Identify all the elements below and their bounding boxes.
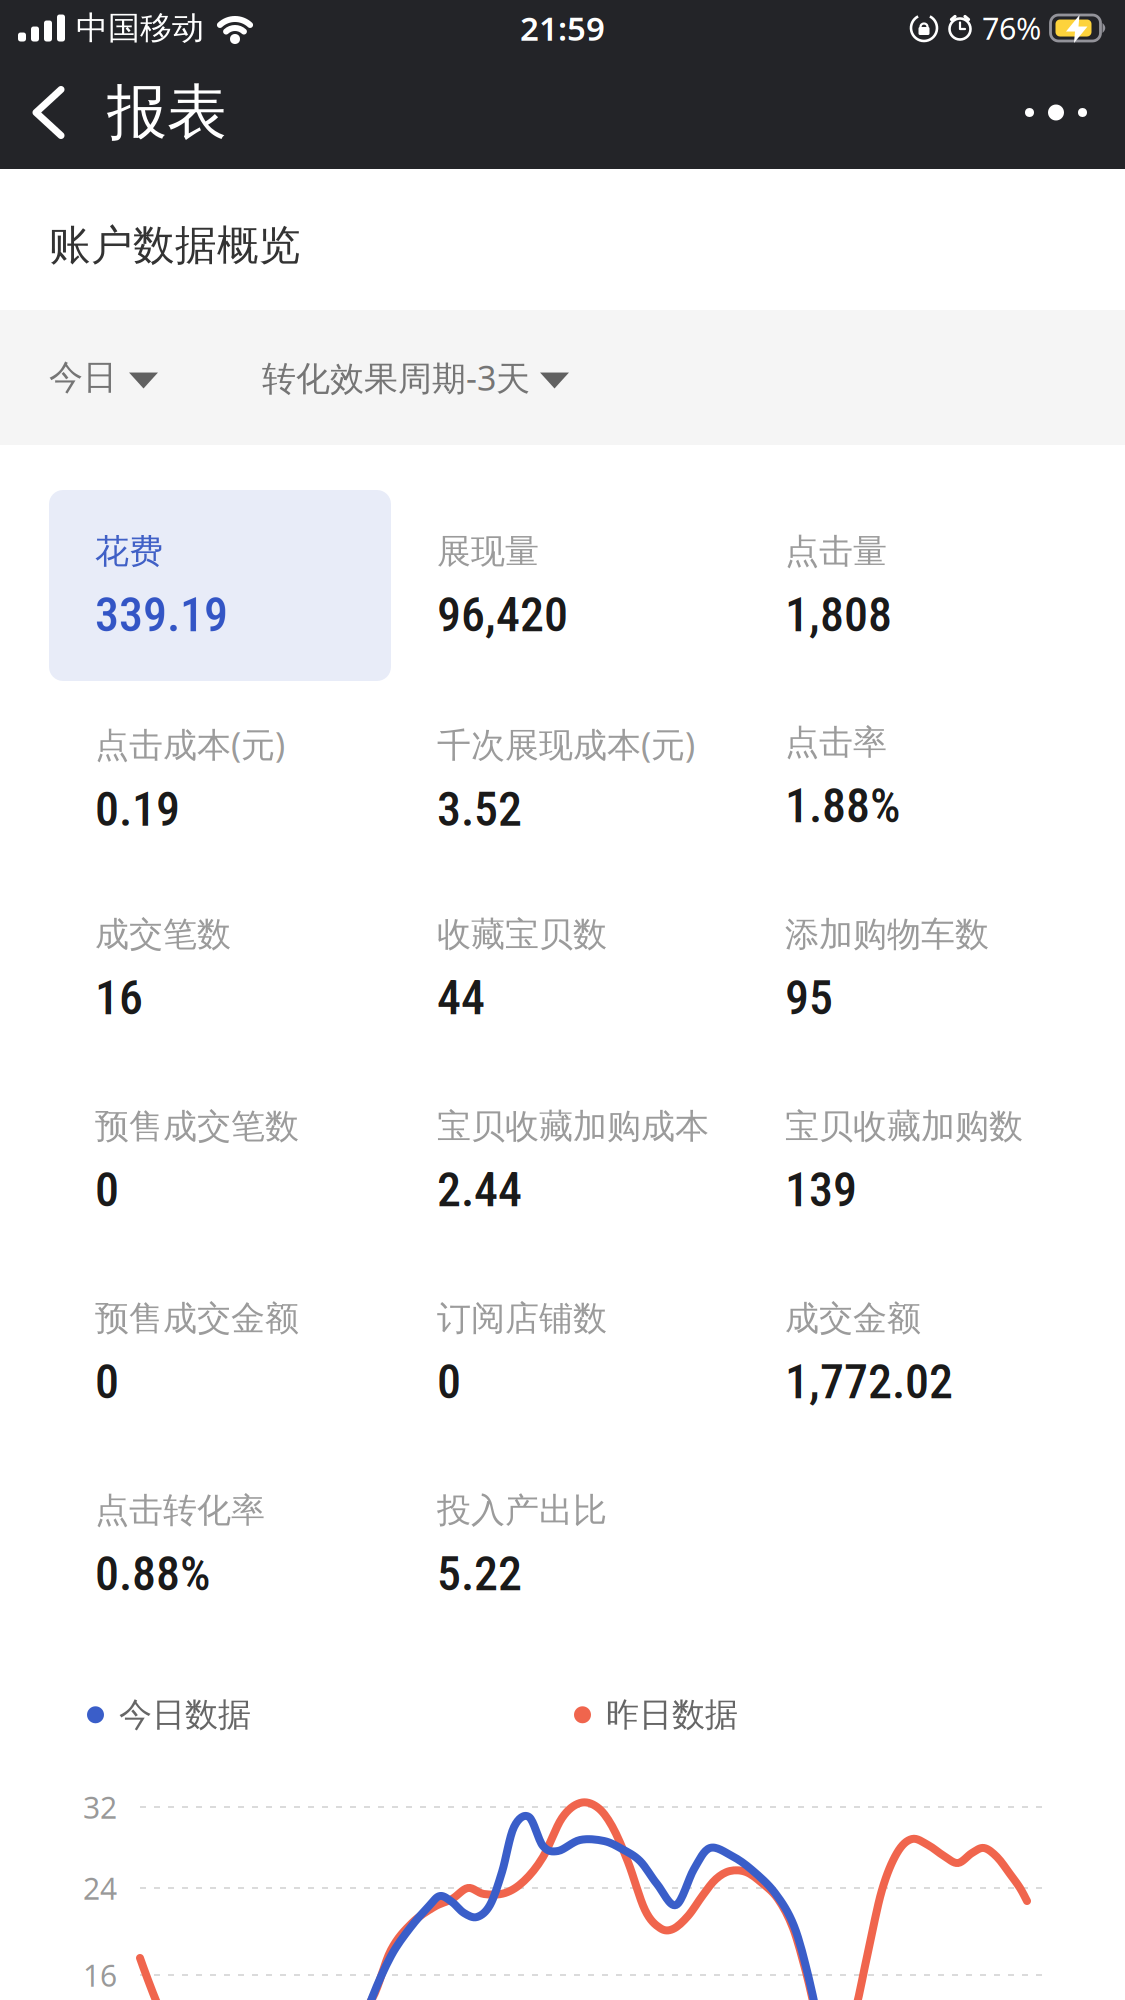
staticText: 339.19 (95, 587, 228, 643)
button[interactable]: 转化效果周期-3天 (262, 354, 569, 401)
button[interactable]: 成交笔数 (49, 873, 391, 1065)
staticText: 报表 (107, 75, 227, 150)
button[interactable]: 点击转化率 (49, 1449, 391, 1641)
button[interactable]: 今日数据 (87, 1694, 251, 1736)
button[interactable]: 点击率 (739, 681, 1087, 873)
staticText: 宝贝收藏加购数 (785, 1105, 1023, 1148)
staticText: 点击成本(元) (95, 721, 285, 767)
button[interactable]: 成交金额 (739, 1257, 1087, 1449)
staticText: 0 (437, 1354, 461, 1410)
staticText: 千次展现成本(元) (437, 721, 695, 767)
button[interactable]: 点击成本(元) (49, 681, 391, 873)
staticText: 76% (982, 7, 1041, 49)
button[interactable]: 订阅店铺数 (391, 1257, 739, 1449)
staticText: 5.22 (437, 1546, 522, 1602)
button[interactable]: 昨日数据 (574, 1694, 738, 1736)
button[interactable]: 点击量 (739, 490, 1087, 682)
button[interactable]: 投入产出比 (391, 1449, 739, 1641)
button[interactable]: 千次展现成本(元) (391, 681, 739, 873)
staticText: 95 (785, 970, 833, 1026)
staticText: 成交金额 (785, 1297, 921, 1340)
staticText: 点击量 (785, 530, 887, 573)
staticText: 收藏宝贝数 (437, 913, 607, 956)
staticText: 1,808 (785, 587, 892, 643)
staticText: 1.88% (785, 778, 901, 834)
button[interactable]: 今日 (49, 356, 158, 399)
staticText: 0.19 (95, 781, 180, 837)
button[interactable]: 添加购物车数 (739, 873, 1087, 1065)
staticText: 21:59 (520, 5, 605, 50)
staticText: 点击转化率 (95, 1489, 265, 1532)
staticText: 点击率 (785, 721, 887, 764)
button[interactable]: 预售成交金额 (49, 1257, 391, 1449)
staticText: 中国移动 (76, 8, 204, 48)
button[interactable]: Back (23, 79, 73, 145)
staticText: 16 (95, 970, 143, 1026)
staticText: 0.88% (95, 1546, 211, 1602)
staticText: 96,420 (437, 587, 568, 643)
staticText: 1,772.02 (785, 1354, 953, 1410)
staticText: 今日数据 (119, 1694, 251, 1736)
staticText: 3.52 (437, 781, 522, 837)
button[interactable]: 花费 (49, 490, 391, 681)
staticText: 宝贝收藏加购成本 (437, 1105, 709, 1148)
staticText: 投入产出比 (437, 1489, 607, 1532)
button[interactable]: 宝贝收藏加购数 (739, 1065, 1087, 1257)
button[interactable]: 收藏宝贝数 (391, 873, 739, 1065)
staticText: 预售成交金额 (95, 1297, 299, 1340)
staticText: 139 (785, 1162, 857, 1218)
button[interactable]: 宝贝收藏加购成本 (391, 1065, 739, 1257)
staticText: 订阅店铺数 (437, 1297, 607, 1340)
button[interactable]: 展现量 (391, 490, 739, 682)
staticText: 44 (437, 970, 485, 1026)
staticText: 花费 (95, 530, 163, 573)
button[interactable]: 预售成交笔数 (49, 1065, 391, 1257)
button[interactable]: More (1025, 79, 1087, 145)
staticText: 16 (83, 1955, 117, 1995)
staticText: 预售成交笔数 (95, 1105, 299, 1148)
staticText: 成交笔数 (95, 913, 231, 956)
staticText: 账户数据概览 (49, 219, 301, 272)
staticText: 0 (95, 1354, 119, 1410)
staticText: 展现量 (437, 530, 539, 573)
staticText: 24 (83, 1868, 117, 1908)
staticText: 32 (83, 1787, 117, 1827)
staticText: 昨日数据 (606, 1694, 738, 1736)
staticText: 0 (95, 1162, 119, 1218)
staticText: 今日 (49, 356, 117, 399)
staticText: 转化效果周期-3天 (262, 354, 530, 401)
staticText: 2.44 (437, 1162, 522, 1218)
staticText: 添加购物车数 (785, 913, 989, 956)
